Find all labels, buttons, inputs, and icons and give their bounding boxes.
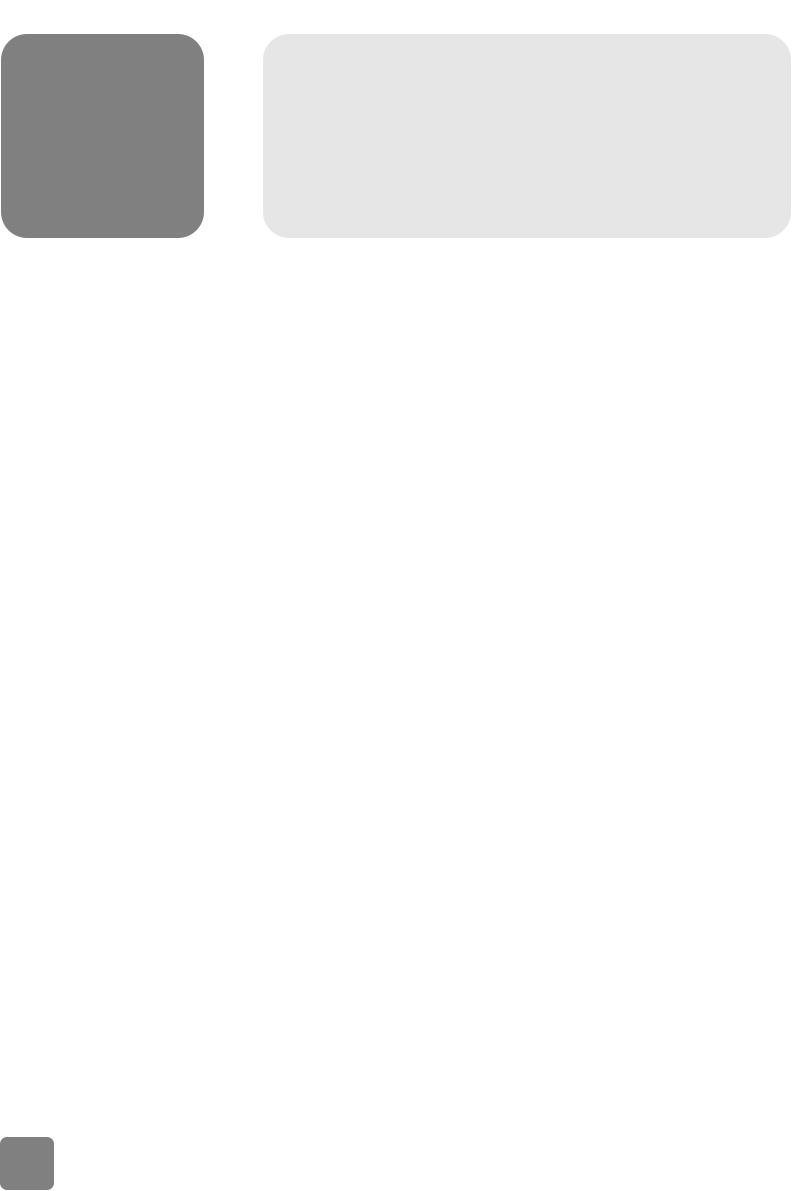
button[interactable]: Artwork: [1, 34, 204, 238]
button[interactable]: More: [0, 1137, 54, 1190]
